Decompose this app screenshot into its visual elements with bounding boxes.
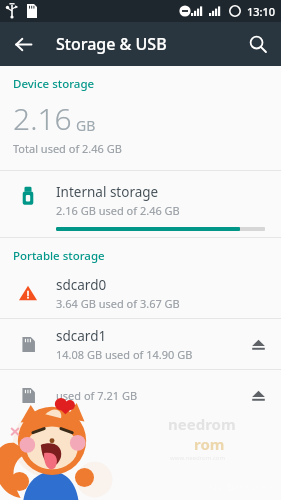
staticText: sdcard0 — [56, 276, 107, 294]
staticText: rom — [194, 434, 225, 454]
staticText: Device storage — [13, 76, 95, 92]
staticText: 3.64 GB used of 3.67 GB — [56, 296, 180, 311]
staticText: www.needrom.com — [170, 454, 226, 462]
button[interactable]: Eject — [235, 370, 281, 420]
button[interactable]: Back — [6, 27, 40, 61]
button[interactable]: sdcard1 — [0, 319, 281, 369]
staticText: 14.08 GB used of 14.90 GB — [56, 347, 193, 362]
staticText: needrom — [168, 414, 236, 434]
button[interactable]: Search — [241, 27, 275, 61]
staticText: Storage & USB — [56, 33, 167, 55]
staticText: sdcard1 — [56, 327, 107, 345]
staticText: 2.16 — [13, 98, 72, 139]
button[interactable]: used of 7.21 GB — [0, 370, 281, 420]
staticText: 2.16 GB used of 2.46 GB — [56, 203, 180, 218]
staticText: 13:10 — [247, 4, 276, 19]
staticText: used of 7.21 GB — [56, 388, 138, 403]
button[interactable]: Eject — [235, 319, 281, 369]
staticText: Portable storage — [13, 248, 105, 264]
staticText: Internal storage — [56, 183, 159, 201]
button[interactable]: Internal storage — [0, 171, 281, 237]
staticText: GB — [76, 116, 96, 135]
staticText: Total used of 2.46 GB — [13, 141, 122, 156]
button[interactable]: sdcard0 — [0, 268, 281, 318]
